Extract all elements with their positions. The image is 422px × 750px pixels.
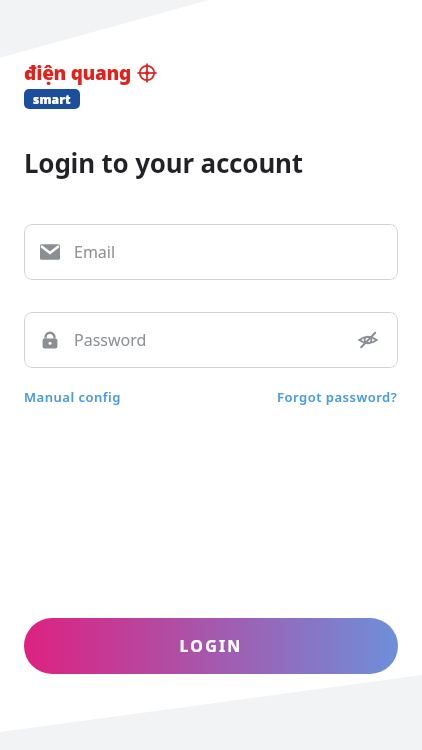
button[interactable]: LOGIN [24,618,398,674]
button[interactable]: Email [24,224,398,280]
other: Password [40,330,60,350]
staticText: Manual config [24,388,121,406]
other: Email [40,242,60,262]
staticText: Login to your account [24,145,303,180]
button[interactable]: Manual config [24,384,121,410]
button[interactable]: Forgot password? [277,384,398,410]
button[interactable]: Show password [354,326,382,354]
button[interactable]: Password [24,312,398,368]
staticText: LOGIN [179,635,243,657]
staticText: Password [74,329,147,351]
staticText: Forgot password? [277,388,398,406]
staticText: điện quang [24,60,131,86]
staticText: smart [33,91,71,107]
staticText: Email [74,241,116,263]
